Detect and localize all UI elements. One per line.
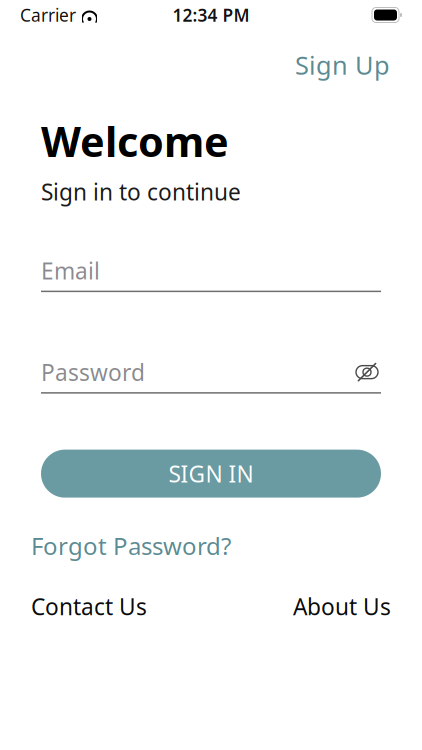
- staticText: Sign in to continue: [41, 176, 241, 207]
- staticText: About Us: [293, 591, 391, 622]
- staticText: Email: [41, 256, 100, 286]
- staticText: 12:34 PM: [172, 3, 249, 26]
- staticText: Sign Up: [295, 48, 390, 82]
- button[interactable]: SIGN IN: [41, 450, 381, 498]
- staticText: Password: [41, 357, 145, 387]
- button[interactable]: Forgot Password?: [31, 526, 231, 565]
- staticText: Welcome: [41, 114, 229, 168]
- staticText: SIGN IN: [168, 459, 253, 489]
- button[interactable]: Contact Us: [31, 587, 147, 626]
- button[interactable]: About Us: [293, 587, 391, 626]
- button[interactable]: Sign Up: [291, 42, 394, 88]
- staticText: Contact Us: [31, 591, 147, 622]
- staticText: Forgot Password?: [31, 530, 231, 561]
- staticText: Carrier: [20, 3, 76, 26]
- button[interactable]: Show password: [353, 358, 381, 386]
